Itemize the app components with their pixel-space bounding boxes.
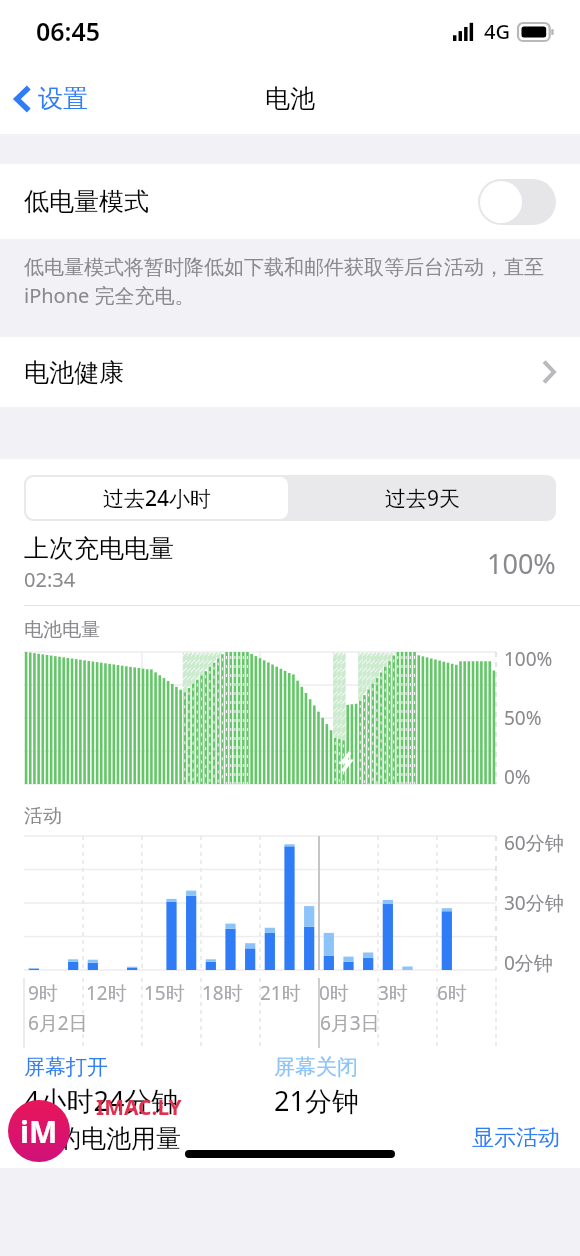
staticText: 60分钟 <box>504 830 564 856</box>
staticText: 50% <box>504 705 542 731</box>
staticText: 0% <box>504 764 531 790</box>
staticText: 活动 <box>24 804 62 828</box>
button[interactable]: 过去9天 <box>290 475 556 521</box>
staticText: 15时 <box>144 980 185 1006</box>
staticText: 9时 <box>28 980 58 1006</box>
staticText: 0时 <box>319 980 349 1006</box>
staticText: 02:34 <box>24 566 76 593</box>
staticText: 的电池用量 <box>56 1123 181 1154</box>
staticText: 6时 <box>437 980 467 1006</box>
button[interactable]: 过去24小时 <box>26 477 288 519</box>
staticText: 30分钟 <box>504 890 564 916</box>
staticText: 屏幕关闭 <box>274 1054 358 1080</box>
staticText: 100% <box>504 646 553 672</box>
staticText: 4G <box>484 18 510 45</box>
staticText: 设置 <box>38 83 88 114</box>
staticText: 0分钟 <box>504 950 553 976</box>
staticText: 低电量模式 <box>24 186 149 217</box>
button[interactable]: 设置 <box>0 75 100 122</box>
staticText: 电池电量 <box>24 618 100 642</box>
staticText: 电池健康 <box>24 357 124 388</box>
staticText: 06:45 <box>36 14 101 48</box>
button[interactable]: 低电量模式开关 <box>478 179 556 225</box>
staticText: 12时 <box>86 980 127 1006</box>
staticText: 21分钟 <box>274 1082 359 1119</box>
staticText: 电池 <box>265 83 315 114</box>
staticText: 过去9天 <box>385 484 461 513</box>
staticText: 4小时24分钟 <box>24 1082 179 1119</box>
staticText: 6月2日 <box>28 1010 88 1036</box>
staticText: 6月3日 <box>320 1010 380 1036</box>
staticText: 屏幕打开 <box>24 1054 108 1080</box>
staticText: 3时 <box>378 980 408 1006</box>
button[interactable]: 低电量模式 <box>0 164 580 239</box>
staticText: iM <box>20 1111 58 1152</box>
staticText: IMAC.LY <box>96 1093 182 1122</box>
staticText: 21时 <box>260 980 301 1006</box>
staticText: 过去24小时 <box>103 484 212 513</box>
button[interactable]: 显示活动 <box>472 1124 560 1152</box>
staticText: 18时 <box>202 980 243 1006</box>
staticText: 低电量模式将暂时降低如下载和邮件获取等后台活动，直至 iPhone 完全充电。 <box>24 253 558 309</box>
staticText: 上次充电电量 <box>24 533 174 564</box>
staticText: 100% <box>487 545 556 582</box>
button[interactable]: 电池健康 <box>0 337 580 407</box>
